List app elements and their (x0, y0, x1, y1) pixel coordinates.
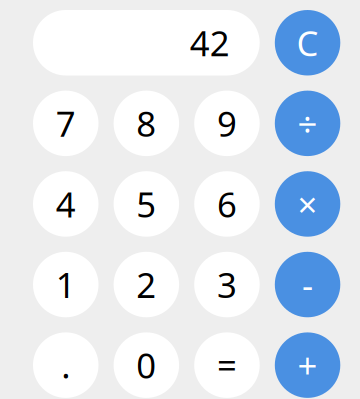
staticText: 0 (136, 342, 156, 388)
button[interactable]: Clear (275, 10, 340, 75)
button[interactable]: 6 (194, 171, 260, 237)
button[interactable]: Subtract (275, 252, 340, 317)
button[interactable]: 3 (194, 252, 260, 317)
button[interactable]: 0 (114, 332, 179, 398)
staticText: . (61, 342, 70, 388)
staticText: 3 (217, 261, 237, 307)
staticText: C (296, 20, 318, 66)
button[interactable]: 2 (114, 252, 179, 317)
staticText: 5 (136, 181, 156, 227)
button[interactable]: 7 (33, 91, 98, 156)
staticText: 42 (190, 20, 230, 66)
staticText: 2 (136, 261, 156, 307)
staticText: = (217, 342, 237, 388)
button[interactable]: 5 (114, 171, 179, 237)
staticText: - (302, 261, 313, 307)
button[interactable]: . (33, 332, 98, 398)
button[interactable]: Divide (275, 91, 340, 156)
button[interactable]: 8 (114, 91, 179, 156)
button[interactable]: 4 (33, 171, 98, 237)
staticText: 7 (56, 100, 76, 146)
staticText: 8 (136, 100, 156, 146)
button[interactable]: Multiply (275, 171, 340, 237)
staticText: ÷ (297, 100, 317, 146)
staticText: × (297, 181, 317, 227)
button[interactable]: 1 (33, 252, 98, 317)
staticText: 1 (56, 261, 76, 307)
staticText: 9 (217, 100, 237, 146)
staticText: + (297, 342, 317, 388)
button[interactable]: 9 (194, 91, 260, 156)
button[interactable]: Add (275, 332, 340, 398)
staticText: 4 (56, 181, 76, 227)
button[interactable]: = (194, 332, 260, 398)
staticText: 6 (217, 181, 237, 227)
